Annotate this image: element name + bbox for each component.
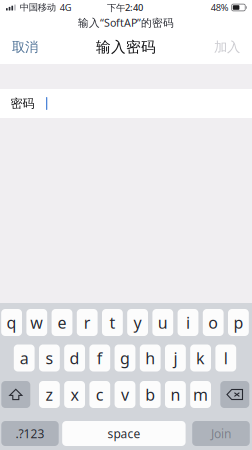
staticText: f (97, 347, 103, 369)
staticText: e (57, 312, 66, 333)
staticText: a (20, 347, 29, 369)
staticText: 取消 (12, 39, 38, 55)
button[interactable]: h (140, 344, 161, 371)
button[interactable]: c (89, 381, 110, 408)
button[interactable]: e (52, 309, 72, 336)
button[interactable]: o (203, 309, 224, 336)
staticText: 输入密码 (96, 38, 156, 56)
button[interactable]: l (215, 344, 236, 371)
staticText: 密码 (10, 96, 34, 111)
staticText: u (158, 312, 168, 333)
staticText: m (193, 384, 208, 405)
staticText: y (134, 312, 142, 333)
staticText: x (71, 384, 79, 405)
staticText: 48% (211, 1, 229, 14)
staticText: r (84, 312, 91, 333)
staticText: v (121, 384, 129, 405)
button[interactable]: x (64, 381, 85, 408)
staticText: t (109, 312, 115, 333)
staticText: 4G (60, 1, 72, 14)
staticText: j (173, 347, 177, 369)
staticText: 下午2:40 (107, 1, 143, 14)
button[interactable]: Delete (220, 381, 249, 408)
button[interactable]: b (140, 381, 161, 408)
staticText: i (186, 312, 190, 333)
staticText: s (45, 347, 53, 369)
staticText: w (30, 312, 43, 333)
staticText: b (145, 384, 155, 405)
staticText: q (7, 312, 17, 333)
button[interactable]: q (1, 309, 22, 336)
staticText: p (233, 312, 243, 333)
staticText: g (120, 347, 130, 369)
button[interactable]: a (14, 344, 35, 371)
staticText: d (70, 347, 80, 369)
button[interactable]: 加入 (205, 30, 249, 64)
staticText: z (45, 384, 53, 405)
button[interactable]: j (165, 344, 186, 371)
staticText: space (107, 425, 140, 441)
button[interactable]: y (127, 309, 148, 336)
staticText: l (224, 347, 228, 369)
button[interactable]: d (64, 344, 85, 371)
button[interactable]: m (190, 381, 211, 408)
button[interactable]: i (178, 309, 198, 336)
button[interactable]: Join (192, 421, 250, 446)
staticText: 中国移动 (20, 2, 56, 13)
staticText: h (145, 347, 155, 369)
staticText: .?123 (15, 425, 44, 441)
staticText: o (208, 312, 218, 333)
button[interactable]: f (89, 344, 110, 371)
button[interactable]: n (165, 381, 186, 408)
button[interactable]: r (77, 309, 98, 336)
button[interactable]: 取消 (3, 30, 47, 64)
button[interactable]: p (228, 309, 249, 336)
button[interactable]: w (26, 309, 47, 336)
button[interactable]: z (39, 381, 60, 408)
staticText: c (96, 384, 104, 405)
button[interactable]: g (115, 344, 135, 371)
staticText: 输入“SoftAP”的密码 (78, 15, 174, 30)
button[interactable]: .?123 (1, 421, 59, 446)
button[interactable]: 密码 (0, 89, 252, 118)
button[interactable]: v (115, 381, 135, 408)
staticText: n (170, 384, 180, 405)
staticText: 加入 (214, 39, 240, 55)
button[interactable]: t (102, 309, 123, 336)
button[interactable]: space (62, 421, 186, 446)
button[interactable]: Shift (1, 381, 30, 408)
button[interactable]: s (39, 344, 60, 371)
button[interactable]: u (152, 309, 173, 336)
button[interactable]: k (190, 344, 211, 371)
staticText: Join (211, 425, 231, 441)
staticText: k (196, 347, 205, 369)
